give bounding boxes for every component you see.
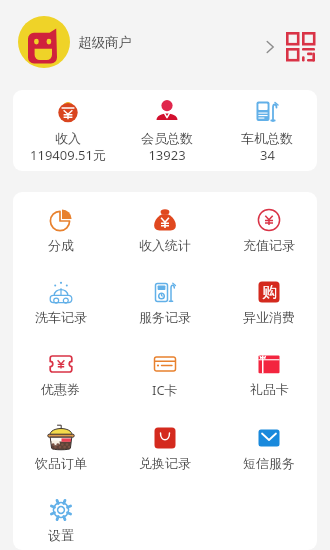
button[interactable]: 礼品卡 (217, 350, 317, 397)
staticText: 充值记录 (243, 237, 295, 253)
staticText: 洗车记录 (35, 309, 87, 325)
button[interactable]: 收入 (18, 90, 117, 171)
staticText: 服务记录 (139, 309, 191, 325)
staticText: 礼品卡 (250, 381, 289, 397)
staticText: 购 (262, 283, 277, 302)
staticText: 收入统计 (139, 237, 191, 253)
staticText: 会员总数 (141, 130, 193, 146)
button[interactable]: 车机总数 (217, 90, 317, 171)
button[interactable]: 商户头像 (18, 16, 70, 68)
button[interactable]: 服务记录 (113, 278, 217, 325)
staticText: 车机总数 (241, 130, 293, 146)
button[interactable]: 饮品订单 (13, 424, 113, 471)
staticText: 兑换记录 (139, 455, 191, 471)
staticText: 34 (260, 146, 275, 164)
button[interactable]: 充值记录 (217, 206, 317, 253)
button[interactable]: 兑换记录 (113, 424, 217, 471)
button[interactable]: 扫一扫 (285, 31, 315, 61)
button[interactable]: IC卡 (113, 350, 217, 399)
button[interactable]: 收入统计 (113, 206, 217, 253)
staticText: 超级商户 (78, 34, 132, 51)
button[interactable]: 会员总数 (117, 90, 217, 171)
button[interactable]: 短信服务 (217, 424, 317, 471)
button[interactable]: 分成 (13, 206, 113, 253)
staticText: 分成 (48, 237, 74, 253)
staticText: 异业消费 (243, 309, 295, 325)
staticText: 短信服务 (243, 455, 295, 471)
button[interactable]: 设置 (13, 496, 113, 543)
staticText: 优惠券 (41, 381, 80, 397)
staticText: 设置 (48, 527, 74, 543)
staticText: 收入 (55, 130, 81, 146)
button[interactable]: 优惠券 (13, 350, 113, 397)
staticText: 13923 (148, 146, 186, 164)
button[interactable]: 更多 (259, 36, 281, 58)
button[interactable]: 购 (217, 278, 317, 325)
staticText: 饮品订单 (35, 455, 87, 471)
button[interactable]: 洗车记录 (13, 278, 113, 325)
staticText: IC卡 (152, 381, 178, 399)
staticText: 119409.51元 (30, 146, 106, 164)
